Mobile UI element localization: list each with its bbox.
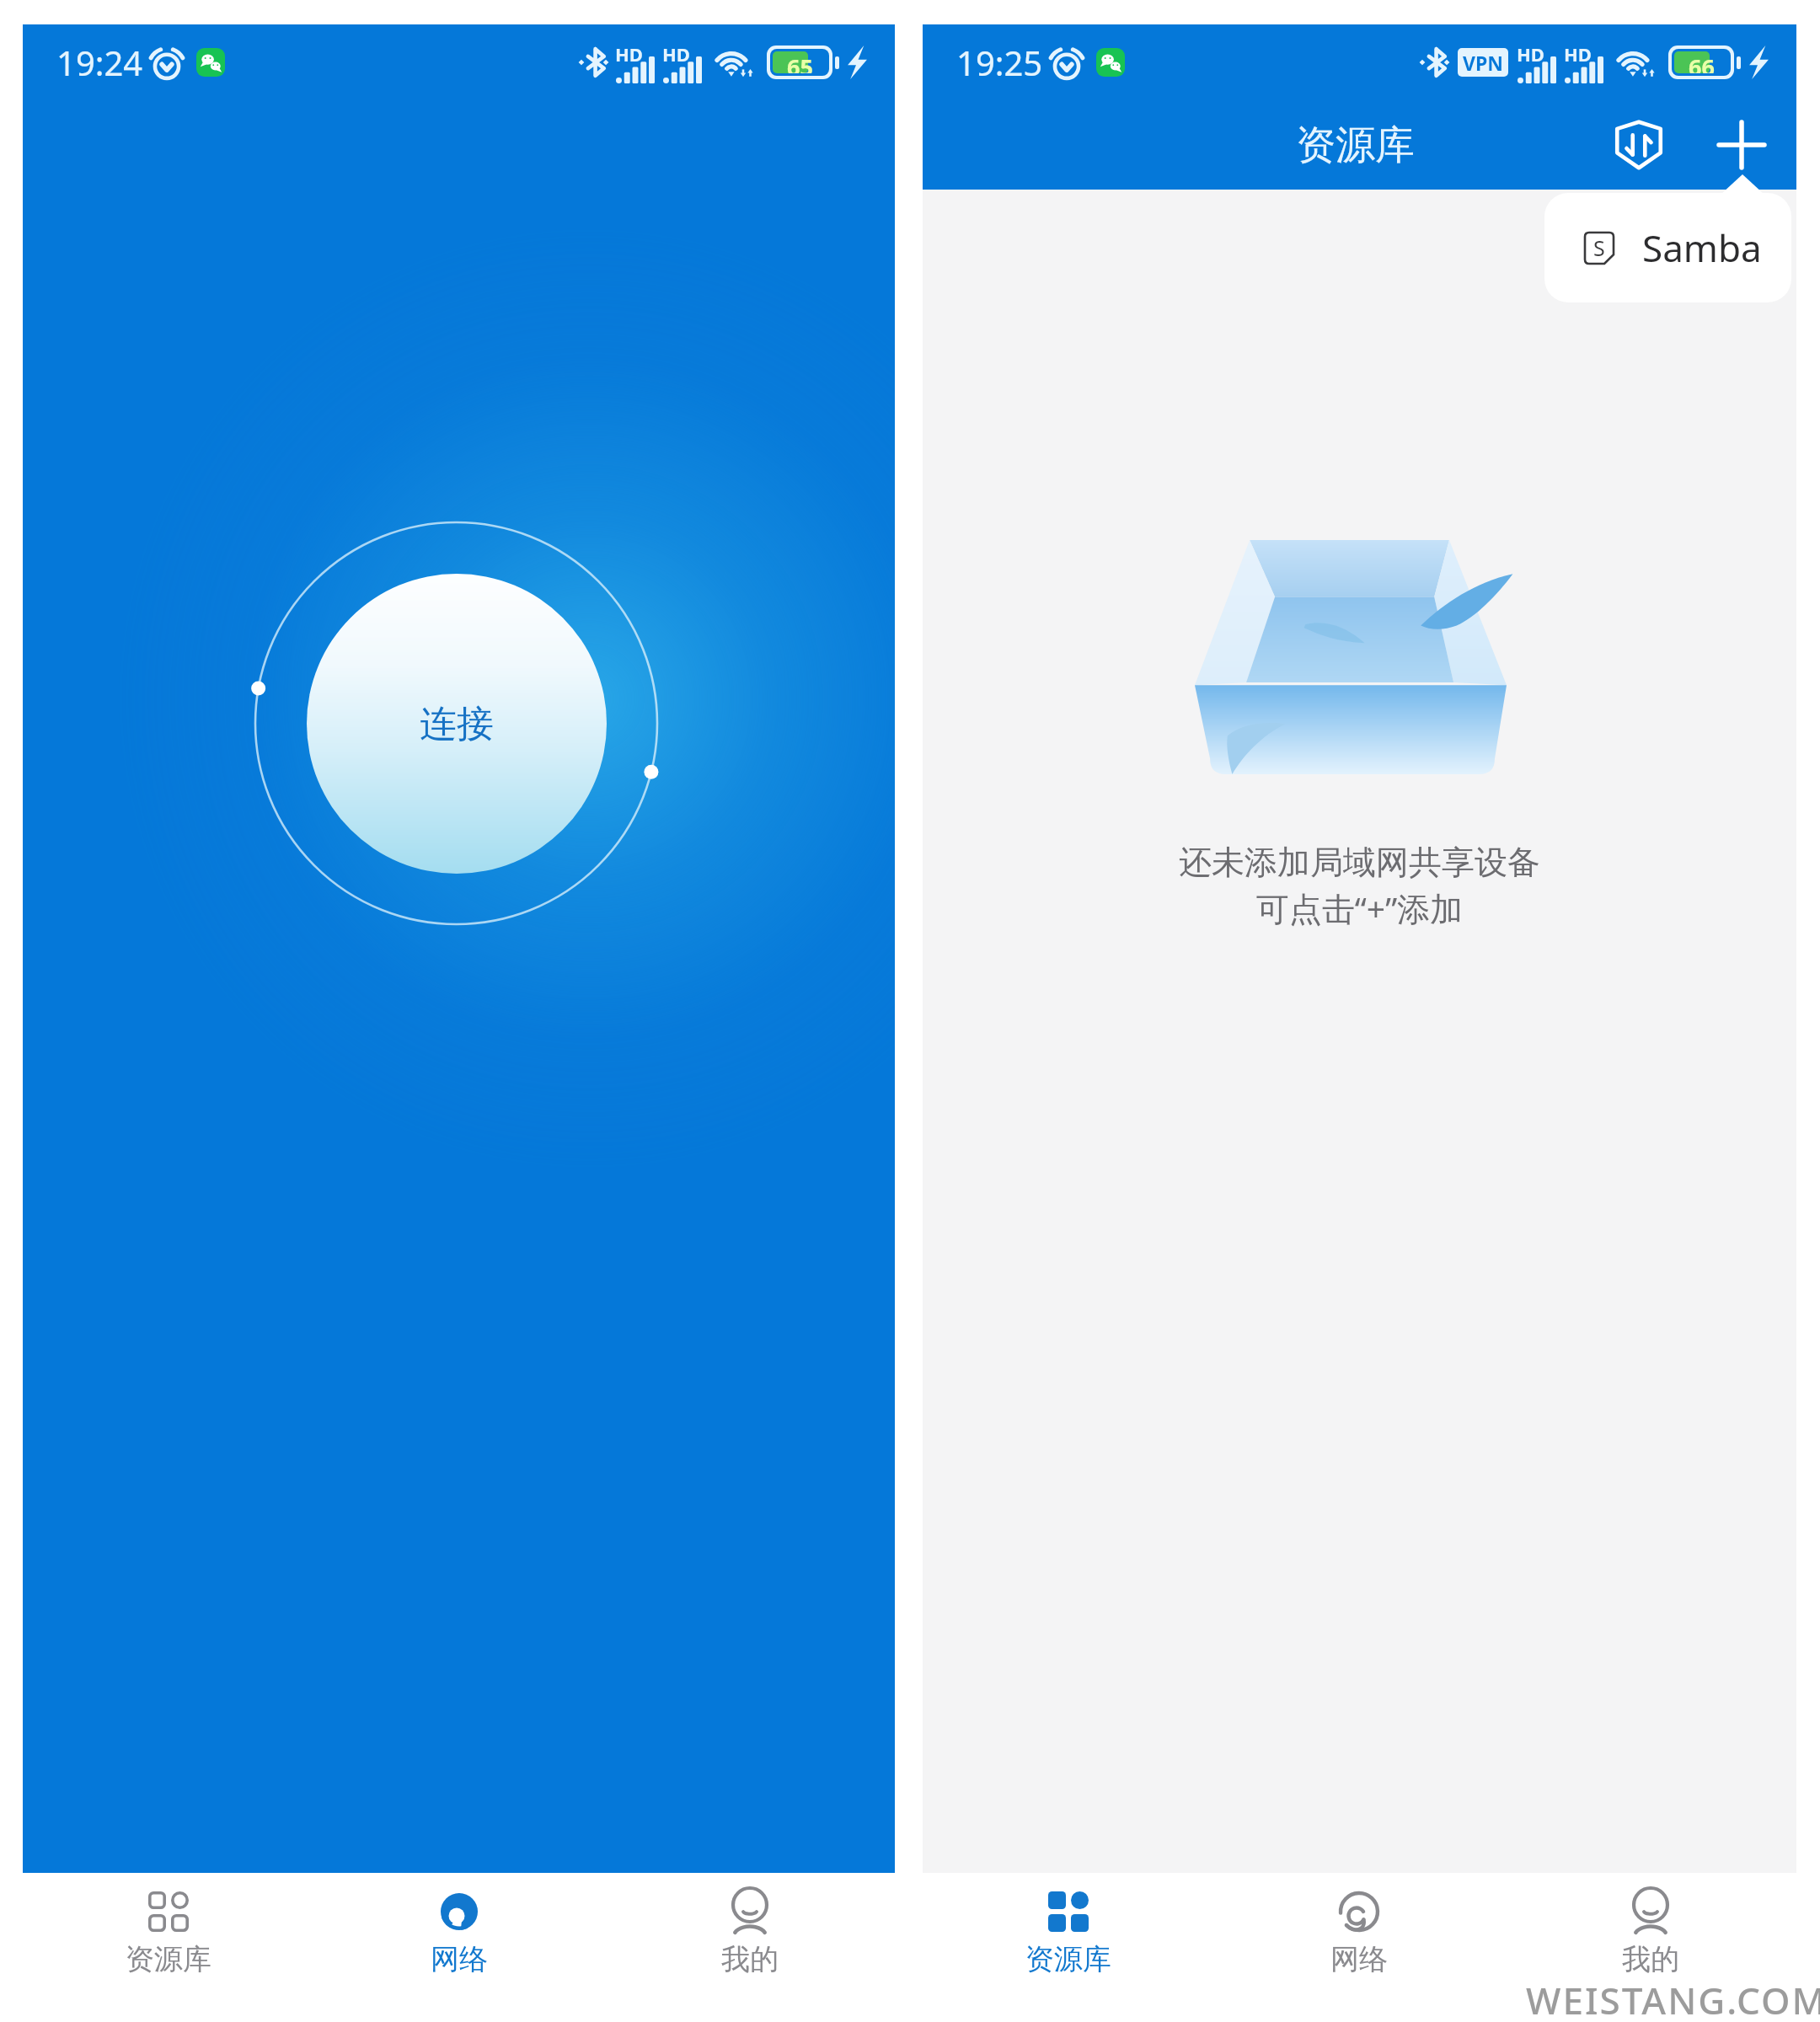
staticText: VPN [1463, 50, 1503, 76]
staticText: 连接 [420, 701, 494, 747]
button[interactable]: Transfer [1595, 101, 1683, 189]
staticText: HD [615, 41, 643, 67]
staticText: 资源库 [1025, 1941, 1111, 1977]
button[interactable]: 我的 [1505, 1873, 1796, 1992]
button[interactable]: 资源库 [923, 1873, 1213, 1992]
staticText: 资源库 [126, 1941, 211, 1977]
staticText: 我的 [721, 1941, 779, 1977]
button[interactable]: Add [1698, 101, 1785, 189]
button[interactable]: 网络 [313, 1873, 604, 1992]
staticText: 19:24 [56, 40, 143, 85]
staticText: 还未添加局域网共享设备 可点击“+”添加 [1179, 842, 1540, 931]
staticText: HD [662, 41, 690, 67]
button[interactable]: 资源库 [23, 1873, 313, 1992]
button[interactable]: S [1544, 193, 1791, 302]
staticText: 我的 [1622, 1941, 1679, 1977]
staticText: Samba [1642, 222, 1762, 273]
button[interactable]: 网络 [1213, 1873, 1505, 1992]
staticText: 19:25 [956, 40, 1043, 85]
button[interactable]: 我的 [604, 1873, 895, 1992]
staticText: 65 [787, 51, 813, 73]
button[interactable]: 连接 [307, 574, 607, 874]
staticText: 资源库 [1296, 120, 1415, 170]
staticText: WEISTANG.COM [1526, 1975, 1820, 2022]
staticText: HD [1564, 41, 1592, 67]
staticText: S [1593, 233, 1605, 262]
staticText: 网络 [431, 1941, 488, 1977]
staticText: 网络 [1330, 1941, 1388, 1977]
staticText: 66 [1689, 51, 1715, 73]
staticText: HD [1517, 41, 1544, 67]
